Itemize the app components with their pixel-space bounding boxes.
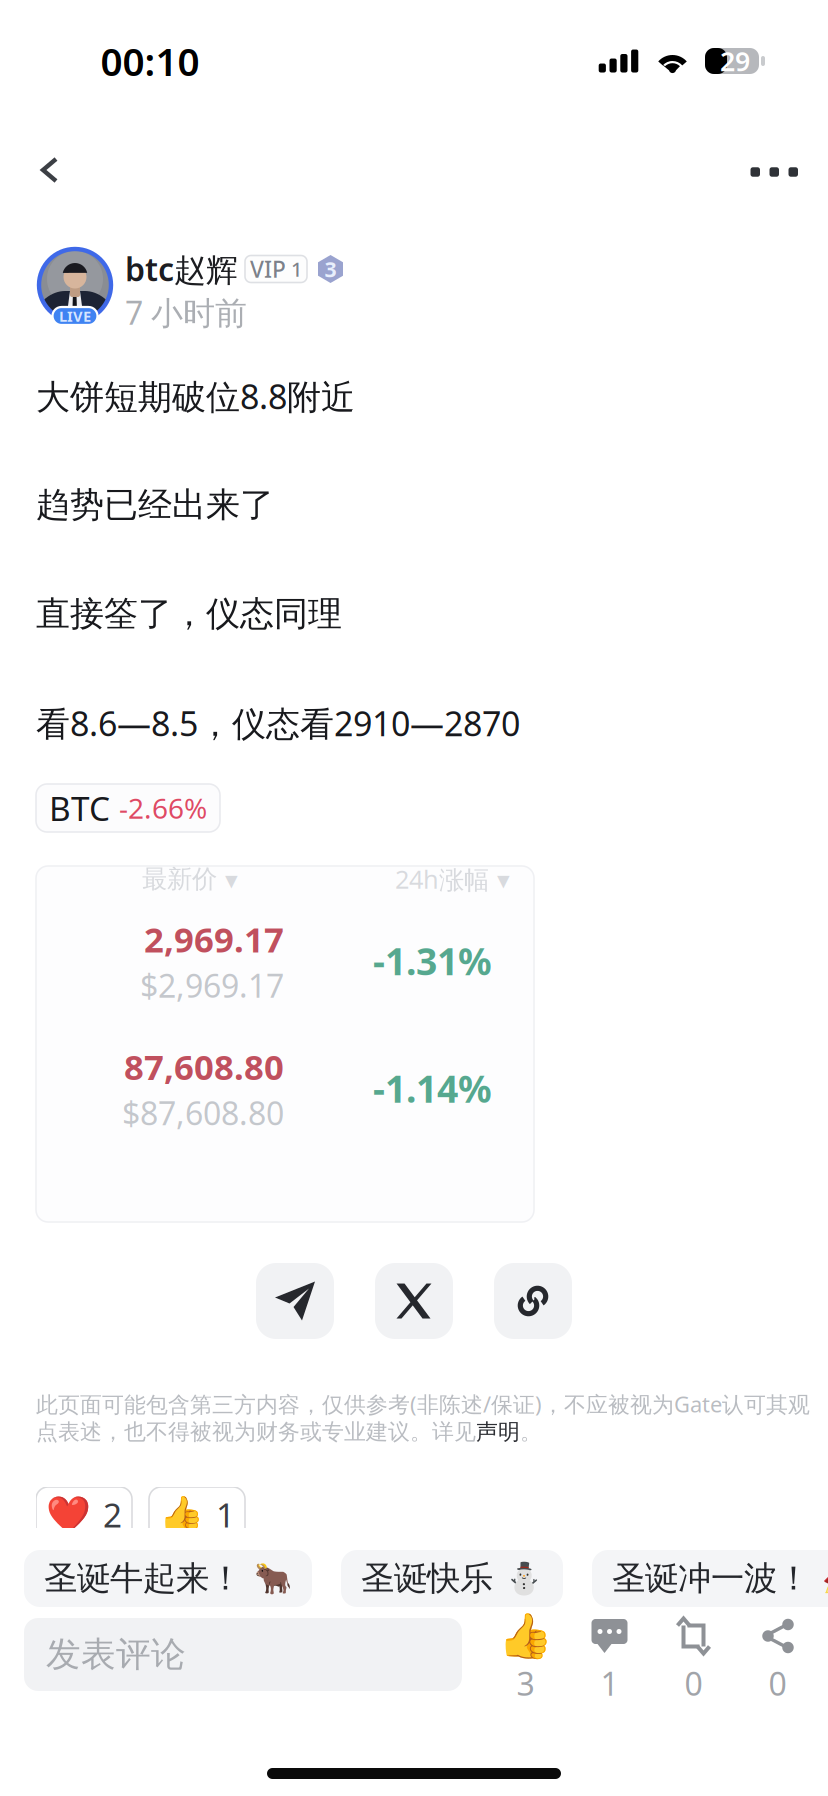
button[interactable]: Share to X bbox=[375, 1263, 453, 1339]
staticText: 最新价 ▾ bbox=[142, 863, 238, 894]
staticText: 00:10 bbox=[100, 35, 199, 87]
staticText: 发表评论 bbox=[46, 1633, 186, 1676]
button[interactable]: Comment bbox=[582, 1618, 637, 1696]
button[interactable]: Copy link bbox=[494, 1263, 572, 1339]
staticText: 圣诞牛起来！ bbox=[44, 1558, 242, 1599]
staticText: ⛄ bbox=[505, 1561, 543, 1596]
button[interactable]: Author avatar bbox=[36, 247, 114, 337]
staticText: 3 bbox=[516, 1662, 534, 1704]
button[interactable]: Thumbs up reaction, 1 bbox=[149, 1487, 245, 1542]
button[interactable]: Share bbox=[750, 1618, 805, 1696]
staticText: 。 bbox=[520, 1418, 542, 1446]
staticText: -1.31% bbox=[373, 936, 492, 986]
staticText: 0 bbox=[684, 1662, 702, 1704]
staticText: 2,969.17 bbox=[144, 916, 284, 962]
button[interactable]: 圣诞牛起来！ bbox=[24, 1550, 312, 1607]
staticText: 直接筌了，仪态同理 bbox=[36, 593, 342, 635]
button[interactable]: More options bbox=[722, 122, 828, 197]
staticText: 0 bbox=[768, 1662, 786, 1704]
button[interactable]: 圣诞冲一波！ bbox=[592, 1550, 828, 1607]
staticText: 圣诞快乐 bbox=[361, 1558, 493, 1599]
staticText: 1 bbox=[291, 256, 302, 282]
button[interactable]: 圣诞快乐 bbox=[341, 1550, 563, 1607]
staticText: 1 bbox=[216, 1492, 235, 1537]
button[interactable]: Repost bbox=[666, 1618, 721, 1696]
staticText: 7 小时前 bbox=[125, 291, 247, 333]
staticText: 87,608.80 bbox=[124, 1043, 284, 1089]
button[interactable]: BTC bbox=[36, 784, 220, 832]
staticText: 🐂 bbox=[254, 1561, 292, 1596]
staticText: 圣诞冲一波！ bbox=[612, 1558, 810, 1599]
staticText: 大饼短期破位8.8附近 bbox=[36, 373, 355, 419]
button[interactable]: Back bbox=[0, 122, 84, 197]
staticText: 2 bbox=[103, 1492, 122, 1537]
staticText: BTC bbox=[49, 786, 110, 830]
staticText: 🚀 bbox=[822, 1561, 828, 1596]
staticText: VIP bbox=[250, 254, 286, 284]
staticText: 声明 bbox=[476, 1418, 520, 1446]
button[interactable]: Share to Telegram bbox=[256, 1263, 334, 1339]
staticText: 看8.6—8.5，仪态看2910—2870 bbox=[36, 700, 520, 746]
staticText: 趋势已经出来了 bbox=[36, 484, 274, 526]
staticText: $87,608.80 bbox=[122, 1092, 284, 1134]
staticText: 29 bbox=[720, 43, 750, 79]
staticText: LIVE bbox=[59, 306, 91, 326]
staticText: 3 bbox=[324, 255, 336, 283]
staticText: -2.66% bbox=[119, 789, 207, 827]
button[interactable]: Write a comment bbox=[24, 1618, 462, 1691]
staticText: 点表述，也不得被视为财务或专业建议。详见 bbox=[36, 1418, 476, 1446]
staticText: 👍 bbox=[159, 1494, 204, 1535]
staticText: 1 bbox=[600, 1662, 618, 1704]
staticText: 👍 bbox=[498, 1611, 553, 1661]
staticText: 24h涨幅 ▾ bbox=[395, 862, 510, 896]
staticText: ❤️ bbox=[46, 1494, 91, 1535]
staticText: 此页面可能包含第三方内容，仅供参考(非陈述/保证)，不应被视为Gate认可其观 bbox=[36, 1389, 810, 1419]
button[interactable]: Heart reaction, 2 bbox=[36, 1487, 132, 1542]
staticText: $2,969.17 bbox=[140, 964, 284, 1006]
button[interactable]: Like bbox=[498, 1618, 553, 1696]
staticText: btc赵辉 bbox=[125, 248, 238, 290]
staticText: -1.14% bbox=[373, 1063, 492, 1113]
